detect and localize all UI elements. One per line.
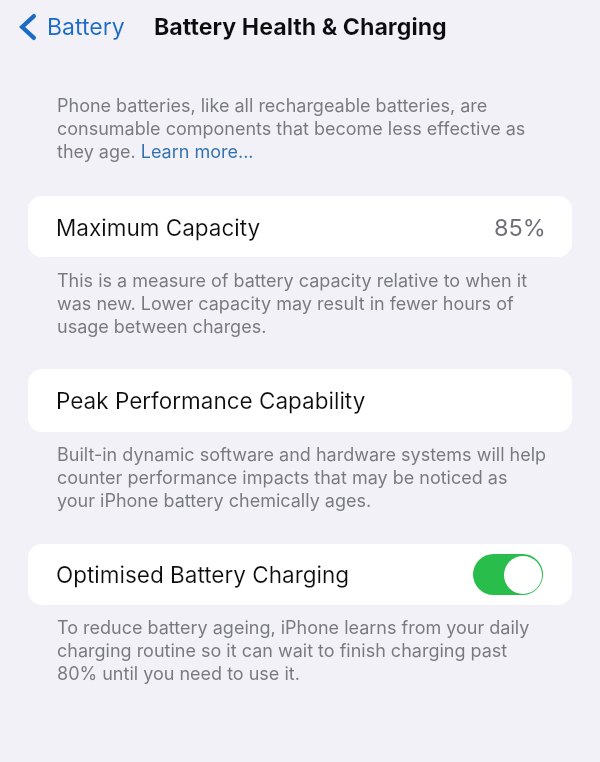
staticText: Maximum Capacity xyxy=(56,214,261,241)
staticText: Phone batteries, like all rechargeable b… xyxy=(57,95,549,162)
button[interactable]: Optimised Battery Charging toggle xyxy=(473,554,543,595)
staticText: Built-in dynamic software and hardware s… xyxy=(57,444,549,511)
button[interactable]: Optimised Battery Charging xyxy=(28,544,572,605)
staticText: 85% xyxy=(494,213,546,241)
staticText: Optimised Battery Charging xyxy=(56,561,350,588)
button[interactable]: Back to Battery xyxy=(16,9,133,45)
staticText: Battery xyxy=(47,13,125,41)
staticText: Peak Performance Capability xyxy=(56,387,366,414)
staticText: Battery Health & Charging xyxy=(154,13,447,41)
button[interactable]: Maximum Capacity xyxy=(28,196,572,257)
staticText: To reduce battery ageing, iPhone learns … xyxy=(57,617,549,684)
button[interactable]: Peak Performance Capability xyxy=(28,369,572,432)
staticText: This is a measure of battery capacity re… xyxy=(57,270,549,337)
